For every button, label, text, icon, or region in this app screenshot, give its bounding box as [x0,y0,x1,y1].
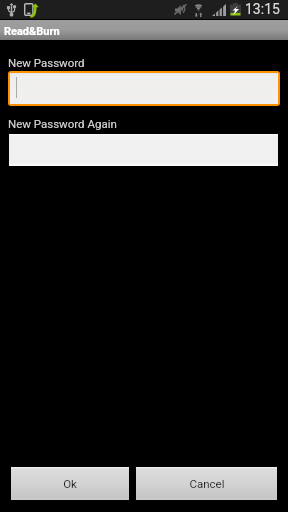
staticText: Ok [63,477,77,490]
button[interactable]: Ok [11,467,129,500]
button[interactable]: Cancel [136,467,277,500]
staticText: Read&Burn [4,25,60,38]
staticText: New Password [8,56,85,69]
button[interactable] [10,73,278,104]
staticText: New Password Again [8,117,117,130]
staticText: 13:15 [245,1,280,17]
staticText: Cancel [189,477,225,490]
